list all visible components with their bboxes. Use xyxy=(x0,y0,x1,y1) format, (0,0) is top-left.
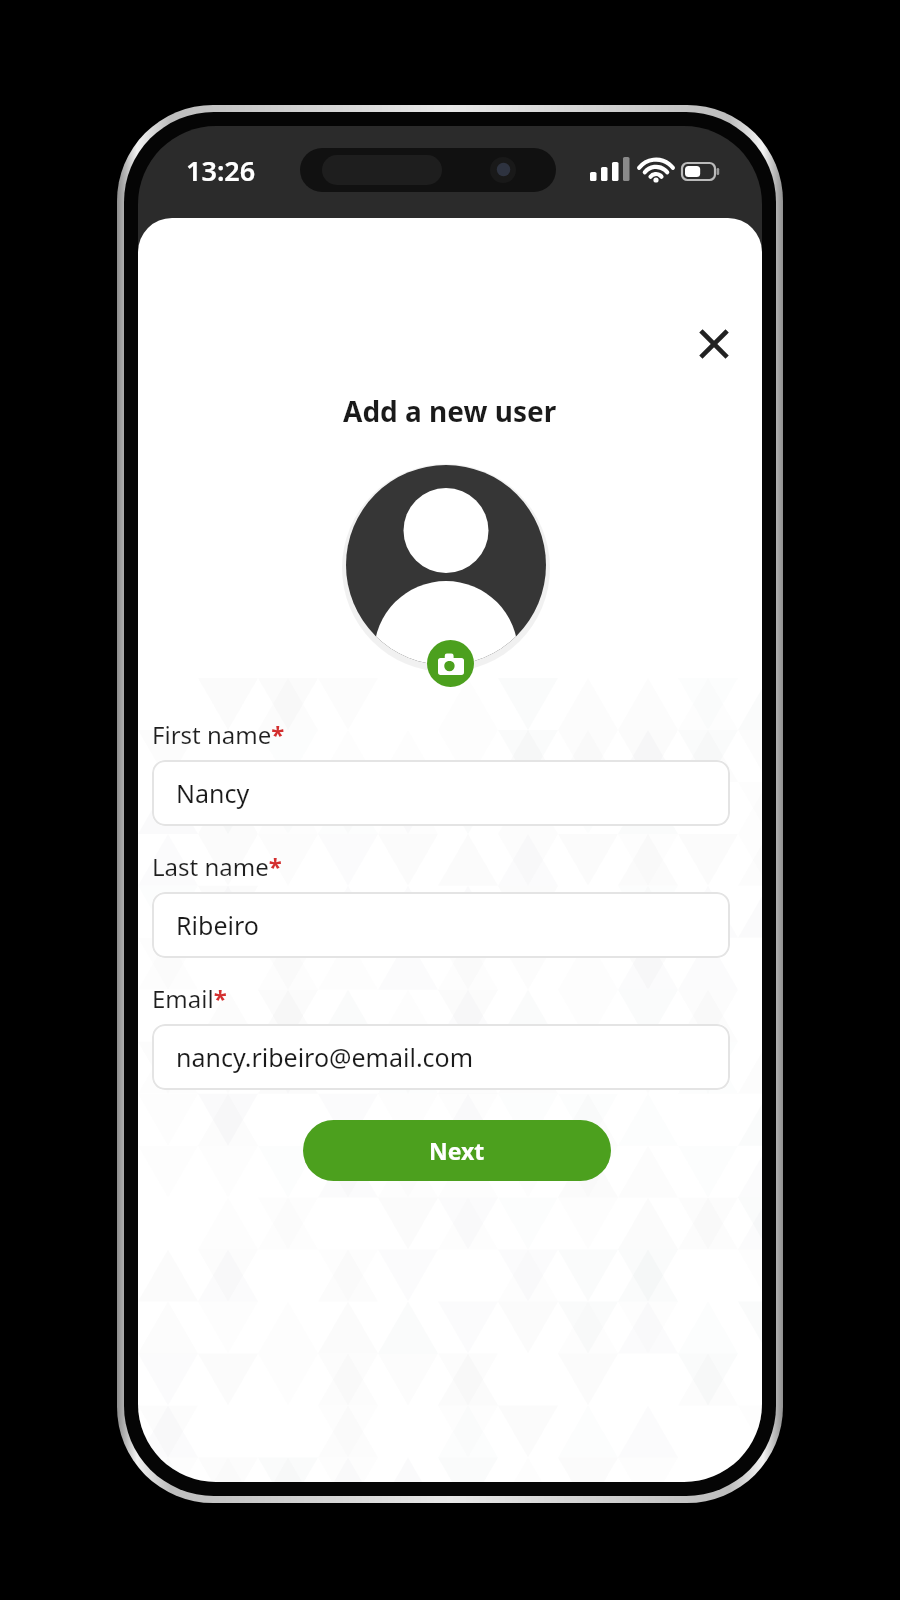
staticText: Add a new user xyxy=(343,392,557,430)
staticText: First name* xyxy=(152,718,285,751)
button[interactable]: Nancy xyxy=(152,760,730,826)
staticText: Nancy xyxy=(176,776,250,810)
staticText: Next xyxy=(429,1135,485,1166)
staticText: Ribeiro xyxy=(176,908,259,942)
button[interactable]: Close xyxy=(684,314,744,374)
button[interactable]: Change photo xyxy=(427,640,474,687)
staticText: nancy.ribeiro@email.com xyxy=(176,1040,474,1074)
button[interactable]: Ribeiro xyxy=(152,892,730,958)
staticText: 13:26 xyxy=(186,152,256,189)
button[interactable]: Next xyxy=(303,1120,611,1181)
staticText: Email* xyxy=(152,982,227,1015)
staticText: Last name* xyxy=(152,850,282,883)
button[interactable]: nancy.ribeiro@email.com xyxy=(152,1024,730,1090)
